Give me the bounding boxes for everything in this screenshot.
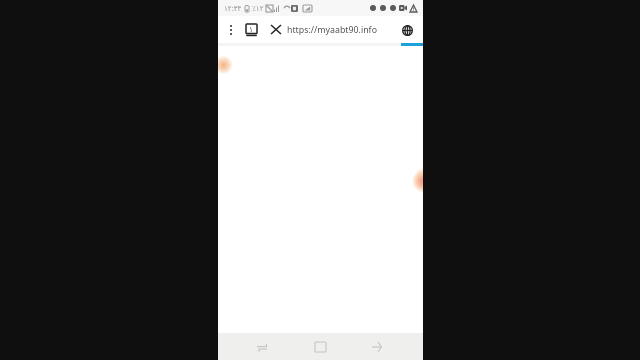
button[interactable]: Site information [397, 20, 417, 40]
button[interactable]: Recents [247, 333, 277, 360]
button[interactable]: Back [362, 333, 392, 360]
staticText: https://myaabt90.info [287, 24, 377, 36]
staticText: ۱ [249, 25, 254, 34]
button[interactable]: https://myaabt90.info [287, 16, 397, 43]
staticText: ۱۲:۳۴ [224, 3, 242, 13]
button[interactable]: Stop loading [268, 22, 283, 37]
staticText: ٪۱۲ [252, 4, 264, 12]
button[interactable]: More options [223, 22, 239, 38]
button[interactable]: Tabs [244, 22, 259, 37]
button[interactable]: Home [305, 333, 335, 360]
